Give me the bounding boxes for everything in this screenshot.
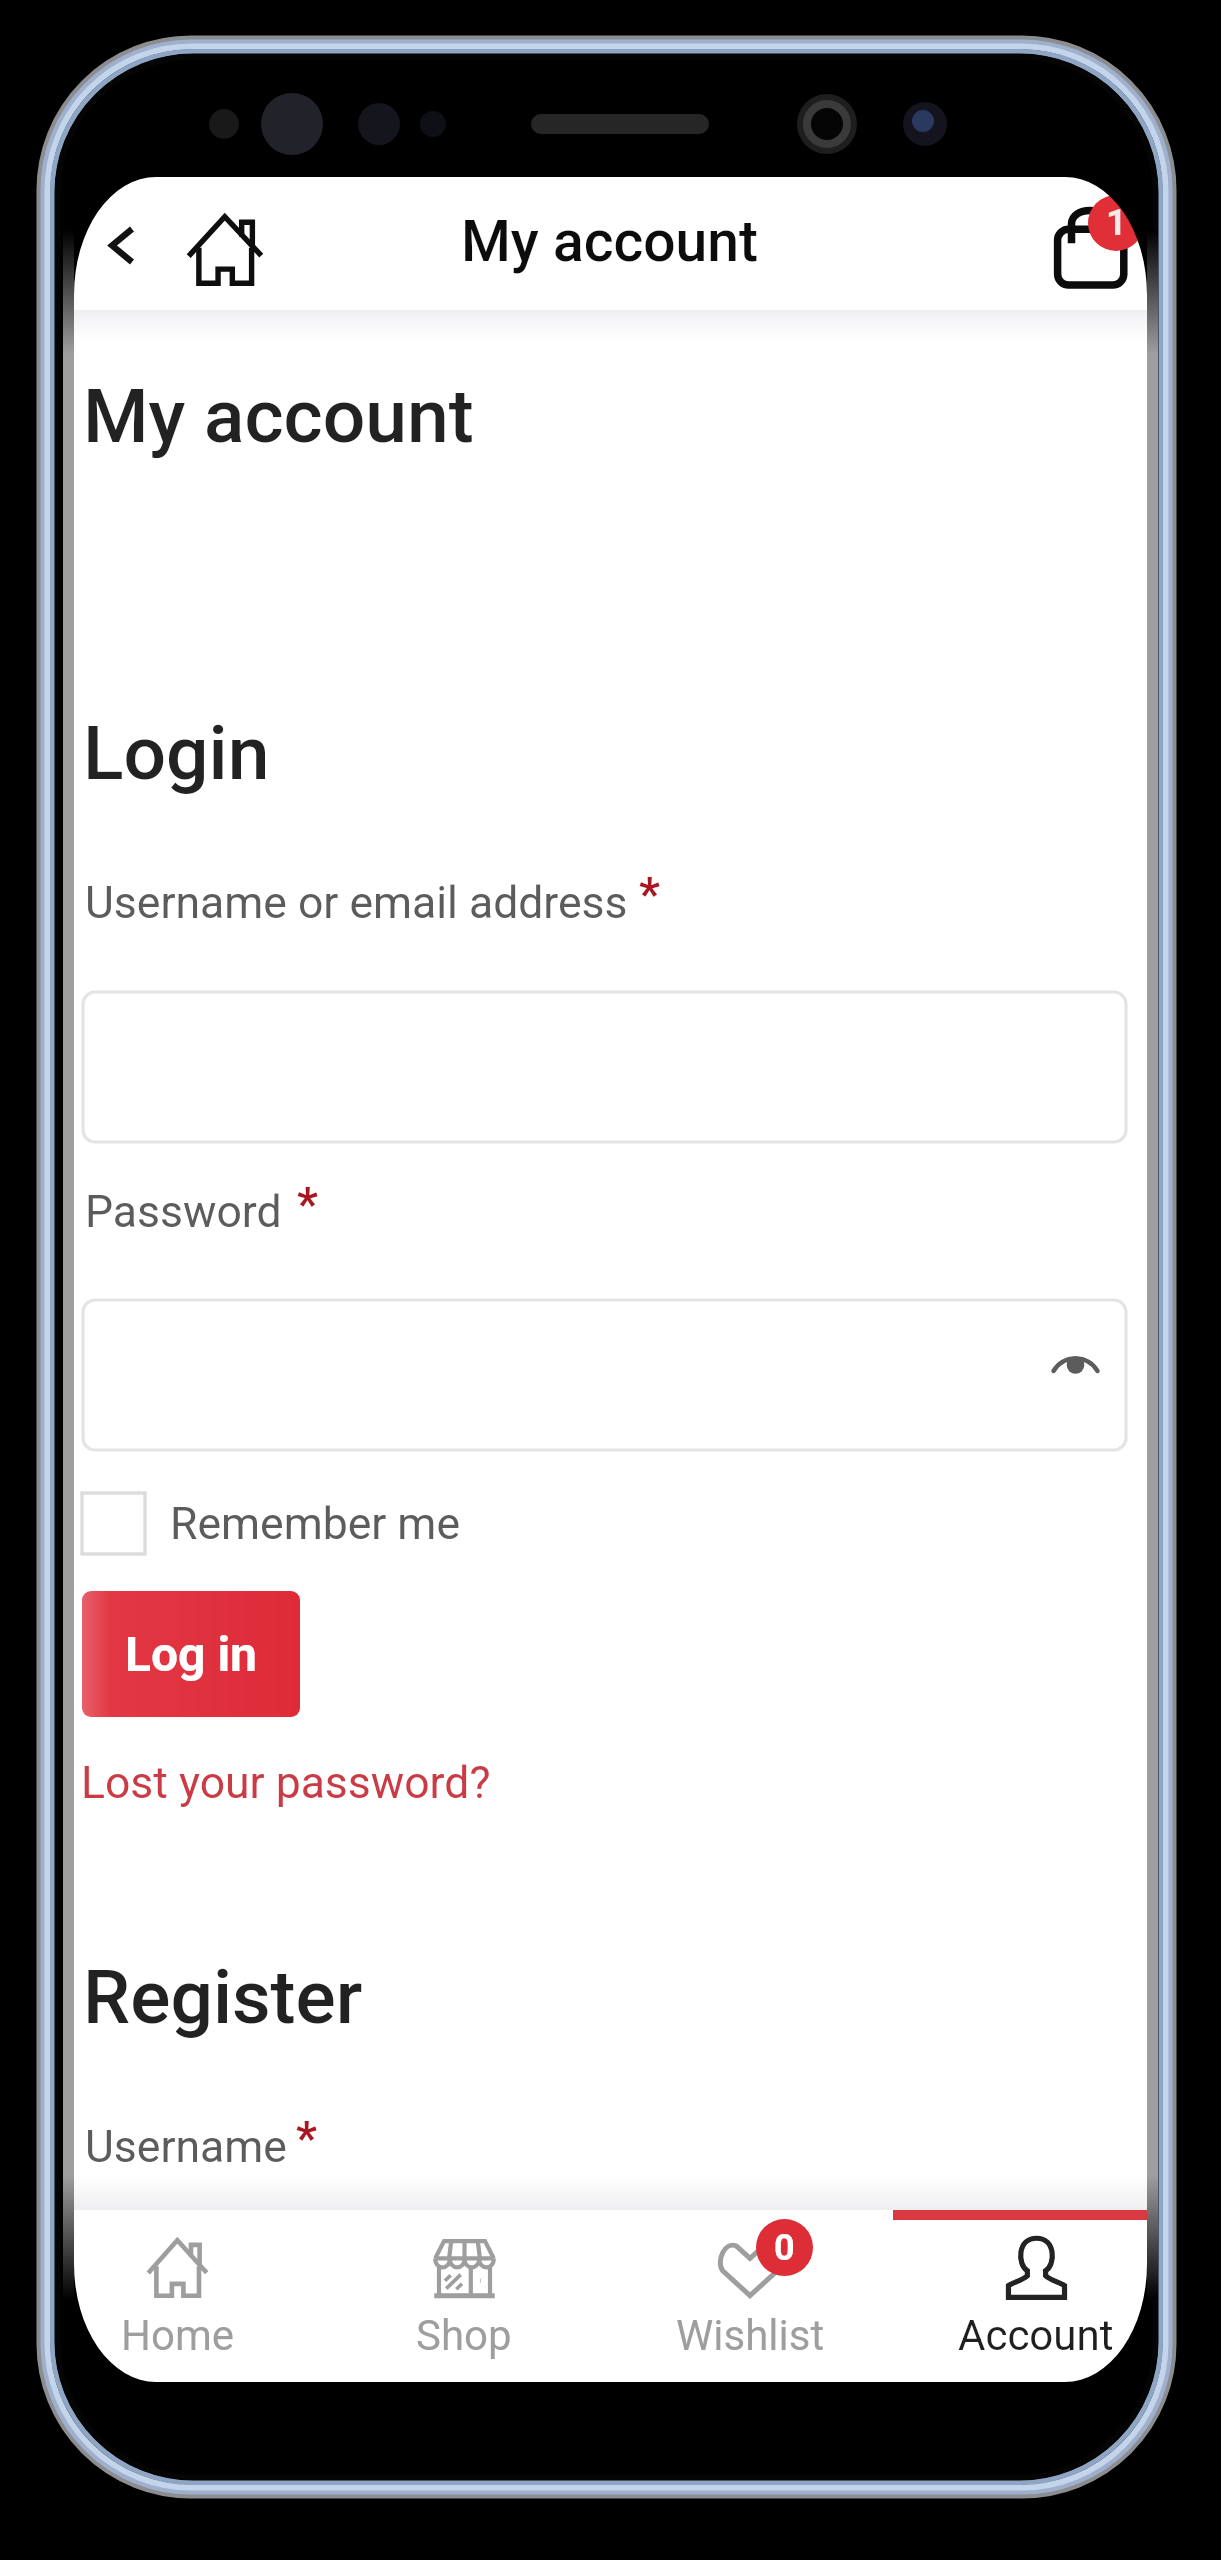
button[interactable]: Log in (82, 1591, 300, 1717)
staticText: Remember me (170, 1498, 460, 1550)
button[interactable] (82, 1493, 502, 1557)
button[interactable]: Home (186, 214, 264, 286)
button[interactable] (83, 992, 1126, 1142)
button[interactable]: Lost your password? (81, 1757, 491, 1809)
staticText: * (639, 867, 660, 921)
button[interactable]: 0 (607, 2210, 893, 2360)
button[interactable]: Cart (1039, 193, 1149, 303)
staticText: Shop (416, 2311, 512, 2360)
button[interactable] (83, 1300, 1126, 1450)
staticText: Login (83, 709, 270, 797)
staticText: Register (83, 1953, 363, 2041)
staticText: My account (83, 372, 474, 460)
staticText: Wishlist (676, 2311, 825, 2360)
button[interactable]: Home (34, 2210, 321, 2360)
staticText: 0 (774, 2227, 795, 2269)
staticText: * (296, 2111, 317, 2165)
button[interactable]: Back (85, 210, 155, 280)
button[interactable]: Account (893, 2210, 1179, 2360)
button[interactable]: Shop (321, 2210, 607, 2360)
staticText: Log in (125, 1626, 258, 1682)
staticText: 1 (1106, 202, 1127, 244)
staticText: Account (958, 2311, 1114, 2360)
staticText: Username or email address (85, 877, 628, 929)
staticText: Home (121, 2311, 235, 2360)
staticText: My account (461, 208, 758, 275)
staticText: Password (85, 1186, 282, 1238)
staticText: Username (85, 2121, 287, 2173)
staticText: * (297, 1177, 318, 1231)
